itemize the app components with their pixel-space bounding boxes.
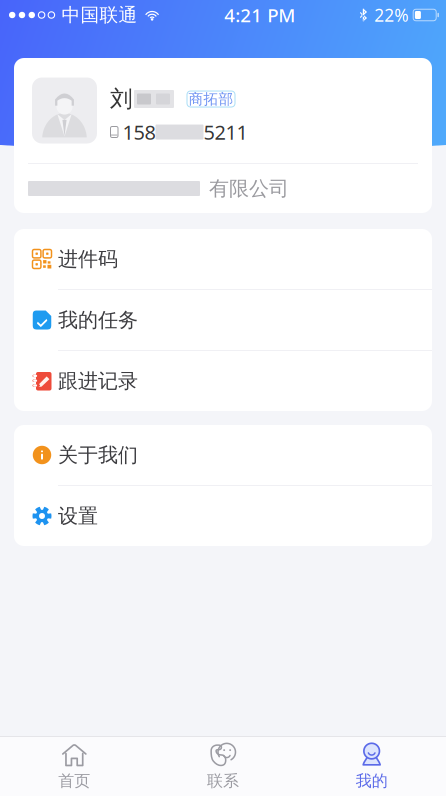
staticText: 商拓部 [188,90,233,108]
button[interactable]: 跟进记录 [14,351,432,411]
staticText: 我的任务 [58,308,138,332]
button[interactable]: 有限公司 [14,164,432,213]
staticText: 我的 [356,771,388,791]
staticText: 22% [374,3,408,26]
staticText: 设置 [58,504,98,528]
button[interactable]: 联系 [149,737,297,796]
staticText: 158 [122,119,155,145]
staticText: 刘 [110,85,133,113]
button[interactable]: 刘 [14,58,432,163]
staticText: 关于我们 [58,443,138,467]
staticText: 有限公司 [209,176,289,201]
staticText: 首页 [58,771,90,791]
button[interactable]: 设置 [14,486,432,546]
staticText: 跟进记录 [58,369,138,393]
button[interactable]: 关于我们 [14,425,432,485]
button[interactable]: 我的任务 [14,290,432,350]
button[interactable]: 首页 [0,737,149,796]
staticText: 联系 [207,771,239,791]
staticText: 进件码 [58,247,118,271]
button[interactable]: 进件码 [14,229,432,289]
button[interactable]: 我的 [297,737,446,796]
staticText: 4:21 PM [224,3,295,27]
staticText: 中国联通 [62,3,138,26]
staticText: 5211 [203,119,247,145]
